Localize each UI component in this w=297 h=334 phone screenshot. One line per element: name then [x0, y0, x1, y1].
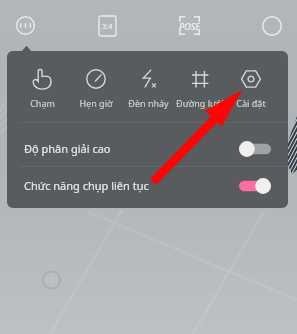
button[interactable]: Hẹn giờ	[70, 51, 122, 122]
staticText: 3:4	[102, 21, 113, 31]
button[interactable]: Pose guide	[172, 8, 206, 43]
button[interactable]: Chức năng chụp liên tục	[7, 167, 288, 204]
button[interactable]: Filter	[254, 8, 289, 43]
staticText: Chạm	[30, 97, 55, 109]
staticText: Chức năng chụp liên tục	[24, 178, 149, 193]
staticText: POSE	[179, 20, 200, 32]
button[interactable]: Đèn nháy	[122, 51, 174, 122]
button[interactable]: Độ phân giải cao	[7, 130, 288, 167]
button[interactable]: Beauty	[8, 8, 43, 43]
button[interactable]: Aspect ratio 3 to 4	[90, 8, 124, 43]
staticText: Hẹn giờ	[79, 97, 113, 109]
button[interactable]: Chạm	[16, 51, 68, 122]
staticText: Độ phân giải cao	[24, 141, 111, 156]
staticText: Đèn nháy	[128, 97, 169, 109]
staticText: Cài đặt	[236, 97, 266, 109]
button[interactable]: Đường lưới	[174, 51, 226, 122]
button[interactable]: Cài đặt	[225, 51, 277, 122]
staticText: Đường lưới	[176, 97, 224, 109]
